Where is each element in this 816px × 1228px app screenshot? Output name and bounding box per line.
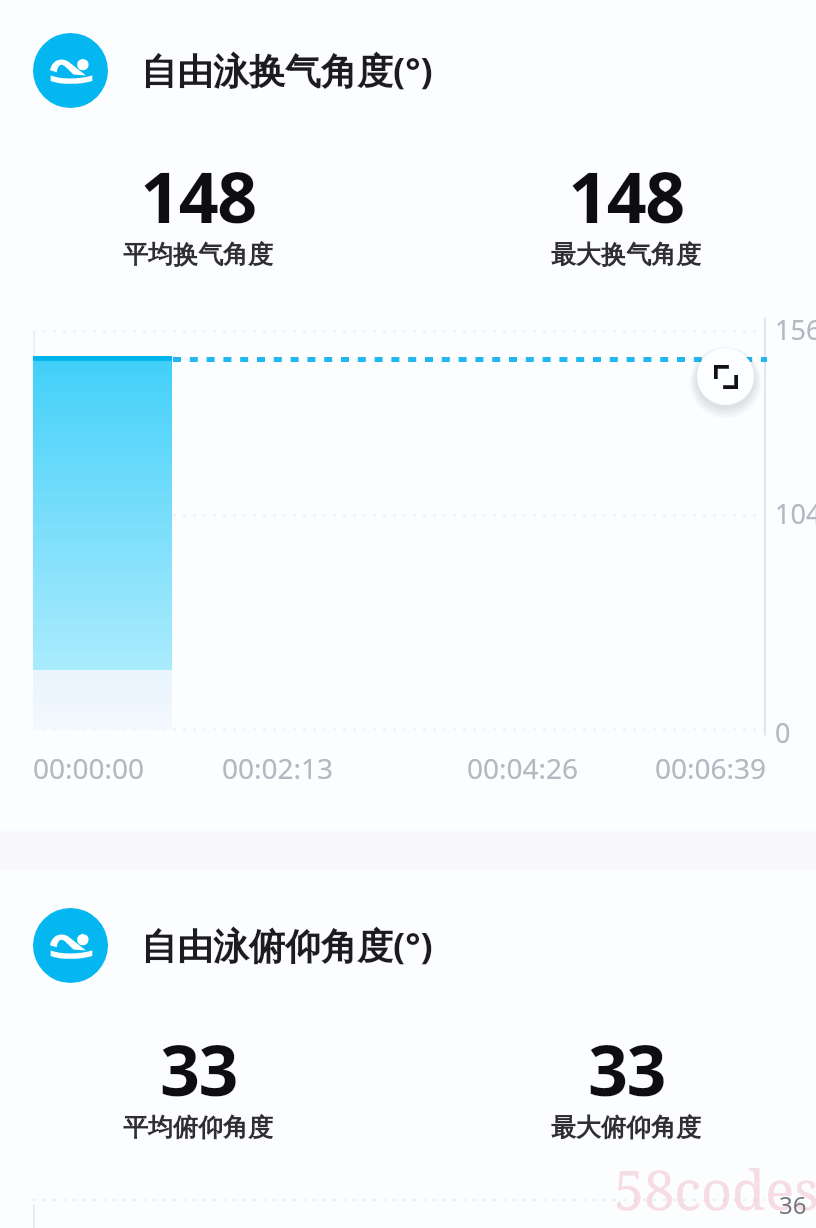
staticText: 33 (160, 1021, 237, 1116)
button[interactable]: Expand chart (697, 348, 754, 405)
staticText: 00:04:26 (467, 749, 579, 787)
staticText: 最大俯仰角度 (551, 1112, 701, 1143)
staticText: 58codes (614, 1152, 816, 1226)
staticText: 0 (775, 714, 791, 751)
staticText: 00:00:00 (33, 749, 145, 787)
staticText: 148 (568, 148, 684, 243)
staticText: 36 (779, 1188, 807, 1221)
button[interactable]: 148 (496, 148, 756, 274)
staticText: 自由泳俯仰角度(°) (141, 921, 433, 970)
button[interactable]: Breathing angle chart (33, 318, 766, 738)
button[interactable]: 33 (68, 1021, 328, 1147)
staticText: 平均俯仰角度 (123, 1112, 273, 1143)
staticText: 104 (775, 495, 816, 532)
staticText: 00:06:39 (655, 749, 767, 787)
staticText: 156 (775, 311, 816, 348)
staticText: 00:02:13 (222, 749, 334, 787)
button[interactable]: 自由泳俯仰角度(°) (33, 908, 433, 983)
button[interactable]: 33 (496, 1021, 756, 1147)
staticText: 自由泳换气角度(°) (141, 46, 433, 95)
staticText: 33 (588, 1021, 665, 1116)
button[interactable]: 148 (68, 148, 328, 274)
button[interactable]: 自由泳换气角度(°) (33, 33, 433, 108)
staticText: 148 (140, 148, 256, 243)
staticText: 平均换气角度 (123, 239, 273, 270)
staticText: 最大换气角度 (551, 239, 701, 270)
